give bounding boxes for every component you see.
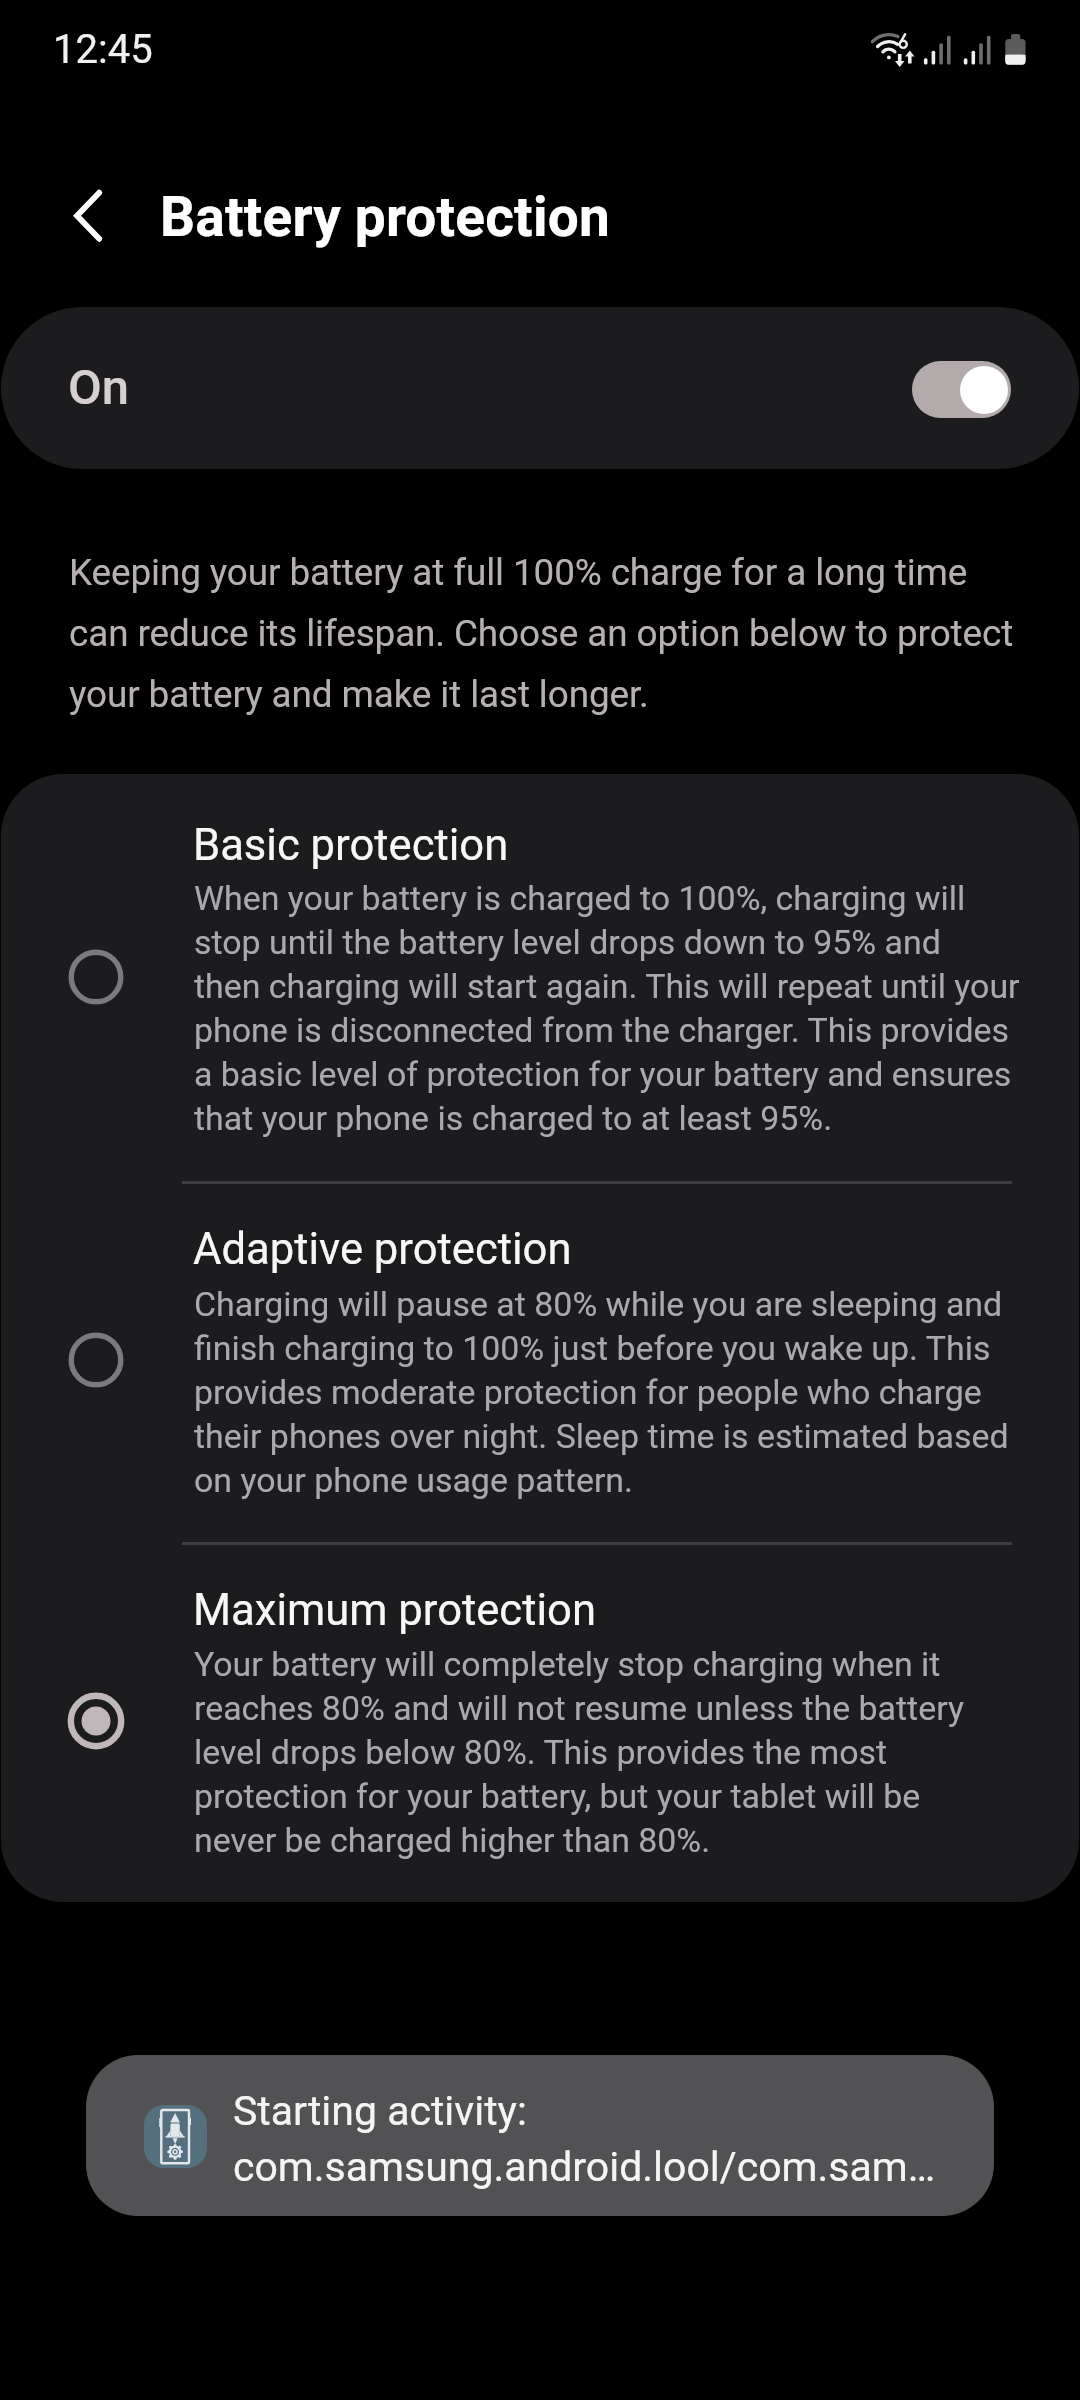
staticText: When your battery is charged to 100%, ch… [194, 875, 1020, 1139]
staticText: Keeping your battery at full 100% charge… [69, 537, 1014, 720]
button[interactable]: Not selected [1, 774, 1079, 1181]
button[interactable]: Not selected [1, 1183, 1079, 1542]
staticText: Basic protection [193, 819, 509, 871]
button[interactable]: Battery protection [140, 166, 680, 266]
other: Not selected [48, 929, 144, 1025]
staticText: Maximum protection [193, 1584, 596, 1636]
button[interactable]: Navigate up [34, 174, 118, 258]
staticText: com.samsung.android.lool/com.sam… [233, 2142, 936, 2191]
button[interactable]: Selected [1, 1544, 1079, 1902]
staticText: 12:45 [53, 25, 153, 73]
other: Selected [48, 1673, 144, 1769]
staticText: Charging will pause at 80% while you are… [194, 1281, 1009, 1501]
staticText: Your battery will completely stop chargi… [194, 1641, 964, 1861]
staticText: On [68, 357, 130, 416]
staticText: Battery protection [160, 184, 610, 250]
other: Not selected [48, 1312, 144, 1408]
button[interactable]: On [1, 307, 1079, 469]
staticText: Starting activity: [233, 2086, 527, 2135]
staticText: Adaptive protection [193, 1223, 572, 1275]
